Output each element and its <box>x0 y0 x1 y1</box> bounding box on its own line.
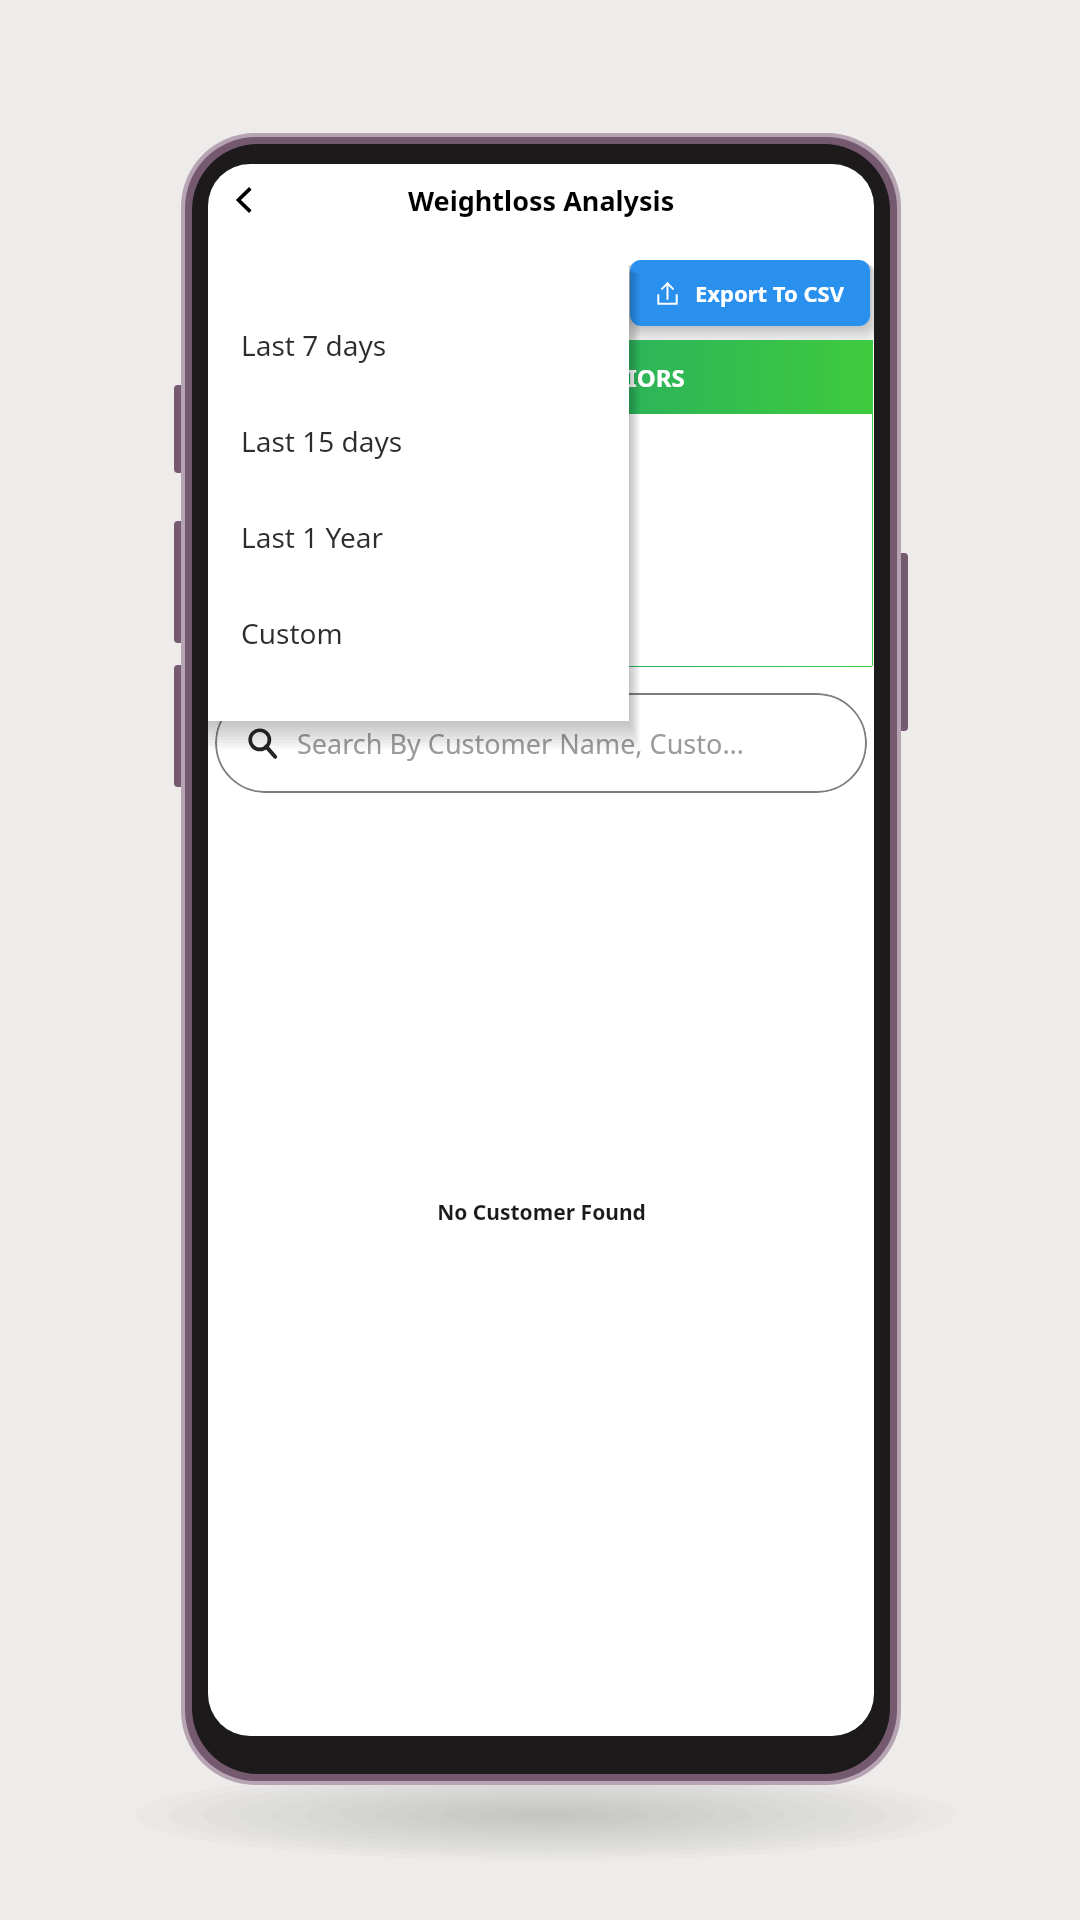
button[interactable]: Last 7 days <box>208 297 629 393</box>
button[interactable]: Back <box>216 172 272 228</box>
button[interactable]: Last 1 Year <box>208 489 629 585</box>
button[interactable]: Search By Customer Name, Custo… <box>215 693 867 793</box>
staticText: Last 7 days <box>241 326 387 364</box>
button[interactable]: Custom <box>208 585 629 681</box>
staticText: Search By Customer Name, Custo… <box>297 725 744 762</box>
staticText: Last 15 days <box>241 422 403 460</box>
staticText: Weightloss Analysis <box>408 182 675 219</box>
staticText: No Customer Found <box>437 1198 646 1227</box>
button[interactable]: Last 15 days <box>208 393 629 489</box>
staticText: Last 1 Year <box>241 518 383 556</box>
staticText: Custom <box>241 614 343 652</box>
staticText: Export To CSV <box>695 278 844 308</box>
button[interactable]: Export To CSV <box>630 260 870 326</box>
staticText: WEIGHTLOSS WARRIORS <box>397 361 685 394</box>
